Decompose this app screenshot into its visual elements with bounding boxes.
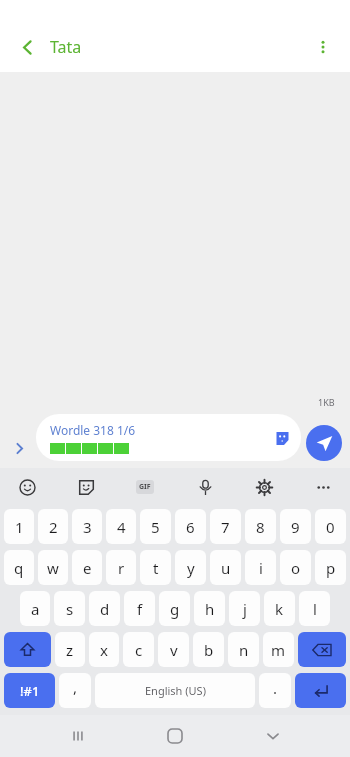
staticText: r [118,558,125,578]
button[interactable]: Backspace [298,632,346,667]
button[interactable]: Shift [4,632,51,667]
staticText: v [170,640,178,660]
staticText: b [204,640,214,660]
button[interactable]: Keyboard settings [249,472,279,502]
button[interactable]: 6 [175,509,206,544]
button[interactable]: 1 [4,509,34,544]
button[interactable]: u [210,550,241,585]
button[interactable]: j [229,591,260,626]
button[interactable]: 5 [140,509,171,544]
staticText: 4 [117,517,126,537]
staticText: x [100,640,108,660]
staticText: 6 [186,517,195,537]
button[interactable]: Wordle 318 1/6 [36,414,301,461]
staticText: . [273,678,278,698]
button[interactable]: More options [308,32,338,62]
button[interactable]: 9 [280,509,311,544]
button[interactable]: f [124,591,155,626]
button[interactable]: a [20,591,50,626]
button[interactable]: Expand [6,435,32,461]
button[interactable]: 0 [315,509,346,544]
button[interactable]: Stickers [270,426,294,450]
button[interactable]: 4 [106,509,136,544]
staticText: 3 [83,517,92,537]
staticText: 8 [256,517,265,537]
button[interactable]: n [228,632,259,667]
staticText: 7 [221,517,230,537]
staticText: p [326,558,336,578]
staticText: k [275,599,284,619]
button[interactable]: d [89,591,120,626]
button[interactable]: Recents [58,716,98,756]
button[interactable]: Hide keyboard [253,716,293,756]
button[interactable]: w [38,550,68,585]
staticText: 1 [15,517,24,537]
staticText: 2 [49,517,58,537]
staticText: w [47,558,59,578]
button[interactable]: r [106,550,136,585]
button[interactable]: i [245,550,276,585]
staticText: Tata [50,36,82,58]
button[interactable]: b [193,632,224,667]
staticText: h [205,599,215,619]
button[interactable]: !#1 [4,673,55,708]
button[interactable]: p [315,550,346,585]
button[interactable]: More options [308,472,338,502]
button[interactable]: 2 [38,509,68,544]
button[interactable]: q [4,550,34,585]
button[interactable]: t [140,550,171,585]
staticText: d [100,599,110,619]
button[interactable]: g [159,591,190,626]
staticText: u [221,558,231,578]
button[interactable]: Send [306,425,342,461]
button[interactable]: o [280,550,311,585]
button[interactable]: x [89,632,119,667]
button[interactable]: m [263,632,294,667]
staticText: , [73,677,78,697]
button[interactable]: 8 [245,509,276,544]
staticText: 9 [291,517,300,537]
button[interactable]: z [55,632,85,667]
staticText: o [291,558,301,578]
button[interactable]: v [158,632,189,667]
staticText: f [137,599,143,619]
staticText: 0 [326,517,335,537]
button[interactable]: y [175,550,206,585]
staticText: t [153,558,159,578]
button[interactable]: . [259,673,291,708]
staticText: a [31,599,40,619]
button[interactable]: , [59,673,91,708]
button[interactable]: e [72,550,102,585]
staticText: GIF [139,482,151,492]
staticText: c [135,640,143,660]
button[interactable]: English (US) [95,673,255,708]
button[interactable]: c [123,632,154,667]
staticText: z [66,640,74,660]
button[interactable]: Enter [295,673,346,708]
staticText: Wordle 318 1/6 [50,422,136,438]
button[interactable]: k [264,591,295,626]
button[interactable]: Home [155,716,195,756]
button[interactable]: l [299,591,330,626]
button[interactable]: Voice input [190,472,220,502]
staticText: s [66,599,74,619]
staticText: l [313,599,317,619]
staticText: y [187,558,195,578]
button[interactable]: 3 [72,509,102,544]
staticText: 5 [151,517,160,537]
staticText: English (US) [145,683,206,698]
button[interactable]: 7 [210,509,241,544]
staticText: j [243,599,247,619]
staticText: g [170,599,180,619]
staticText: n [239,640,249,660]
button[interactable]: Back [12,32,42,62]
button[interactable]: Sticker [71,472,101,502]
staticText: i [259,558,263,578]
button[interactable]: h [194,591,225,626]
button[interactable]: GIF [130,472,160,502]
staticText: q [14,558,24,578]
staticText: 1KB [318,396,335,408]
button[interactable]: Emoji [12,472,42,502]
button[interactable]: s [54,591,85,626]
staticText: m [271,640,286,660]
